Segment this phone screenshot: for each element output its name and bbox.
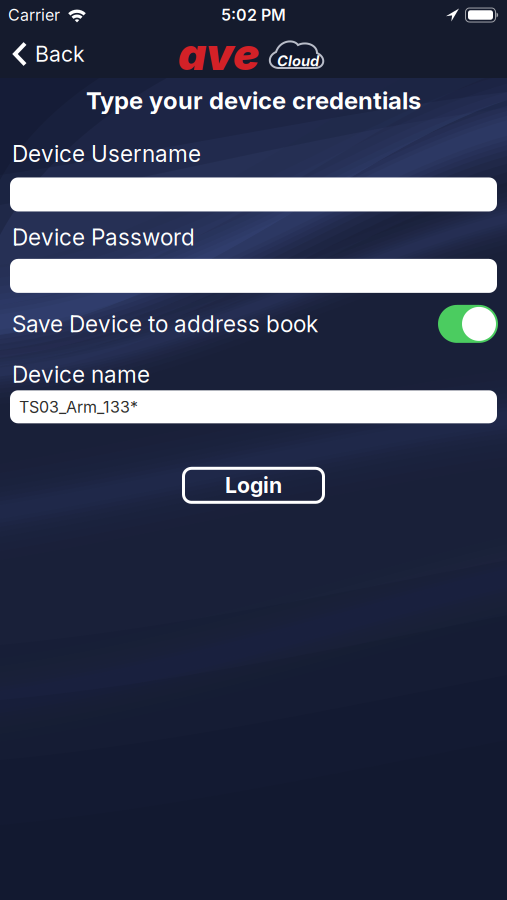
staticText: Login — [225, 472, 282, 498]
staticText: Cloud — [277, 52, 319, 70]
staticText: Carrier — [8, 5, 60, 25]
staticText: ave — [178, 27, 259, 81]
button[interactable]: Login — [183, 468, 323, 502]
staticText: 5:02 PM — [221, 5, 286, 25]
staticText: TS03_Arm_133* — [19, 397, 138, 416]
staticText: Device Username — [12, 140, 201, 167]
staticText: Device name — [12, 361, 150, 388]
textField[interactable]: TS03_Arm_133* — [19, 397, 253, 416]
staticText: Back — [35, 41, 85, 67]
staticText: Type your device credentials — [86, 86, 421, 115]
button[interactable]: Save Device to address book — [438, 305, 498, 343]
button[interactable]: Back — [0, 41, 85, 67]
staticText: Device Password — [12, 223, 195, 251]
staticText: Save Device to address book — [12, 310, 318, 338]
